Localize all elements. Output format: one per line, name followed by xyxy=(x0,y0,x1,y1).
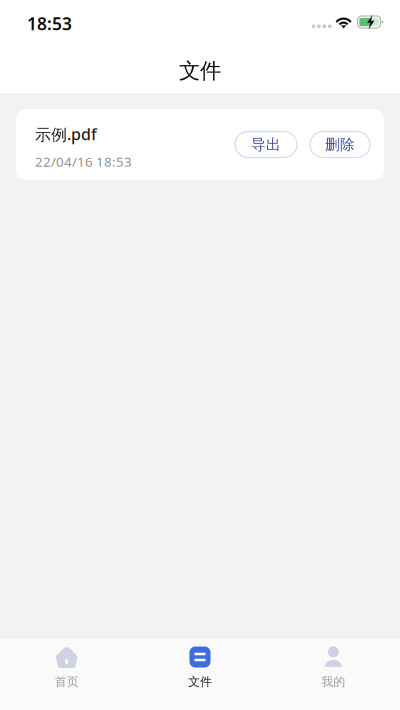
staticText: 文件 xyxy=(179,58,221,84)
staticText: 首页 xyxy=(55,674,79,689)
button[interactable]: 文件 xyxy=(133,638,267,710)
button[interactable]: 导出 xyxy=(235,131,297,157)
staticText: 文件 xyxy=(188,674,212,689)
button[interactable]: 我的 xyxy=(267,638,400,710)
staticText: 导出 xyxy=(251,135,281,153)
button[interactable]: 首页 xyxy=(0,638,133,710)
button[interactable]: 删除 xyxy=(310,131,370,157)
staticText: 示例.pdf xyxy=(35,123,97,145)
staticText: 18:53 xyxy=(27,12,72,35)
staticText: 删除 xyxy=(325,135,355,153)
staticText: 22/04/16 18:53 xyxy=(35,153,132,170)
staticText: 我的 xyxy=(321,674,345,689)
